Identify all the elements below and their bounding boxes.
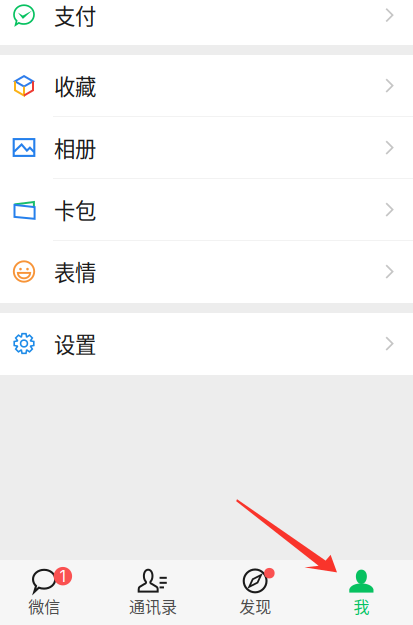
button[interactable]: 我	[310, 555, 413, 625]
staticText: 表情	[54, 256, 96, 287]
staticText: 卡包	[54, 194, 96, 225]
button[interactable]: 表情	[0, 241, 413, 303]
button[interactable]: 1	[0, 555, 103, 625]
button[interactable]: 卡包	[0, 179, 413, 241]
button[interactable]: 通讯录	[103, 555, 206, 625]
staticText: 微信	[28, 594, 60, 618]
staticText: 收藏	[54, 70, 96, 101]
button[interactable]: 支付	[0, 0, 413, 45]
staticText: 1	[59, 566, 66, 586]
staticText: 发现	[239, 594, 271, 618]
button[interactable]: 相册	[0, 117, 413, 179]
staticText: 设置	[54, 328, 96, 359]
staticText: 通讯录	[129, 594, 177, 618]
button[interactable]: 发现	[206, 555, 310, 625]
button[interactable]: 收藏	[0, 55, 413, 117]
button[interactable]: 设置	[0, 313, 413, 375]
staticText: 我	[353, 594, 369, 618]
staticText: 支付	[54, 0, 96, 30]
staticText: 相册	[54, 132, 96, 163]
